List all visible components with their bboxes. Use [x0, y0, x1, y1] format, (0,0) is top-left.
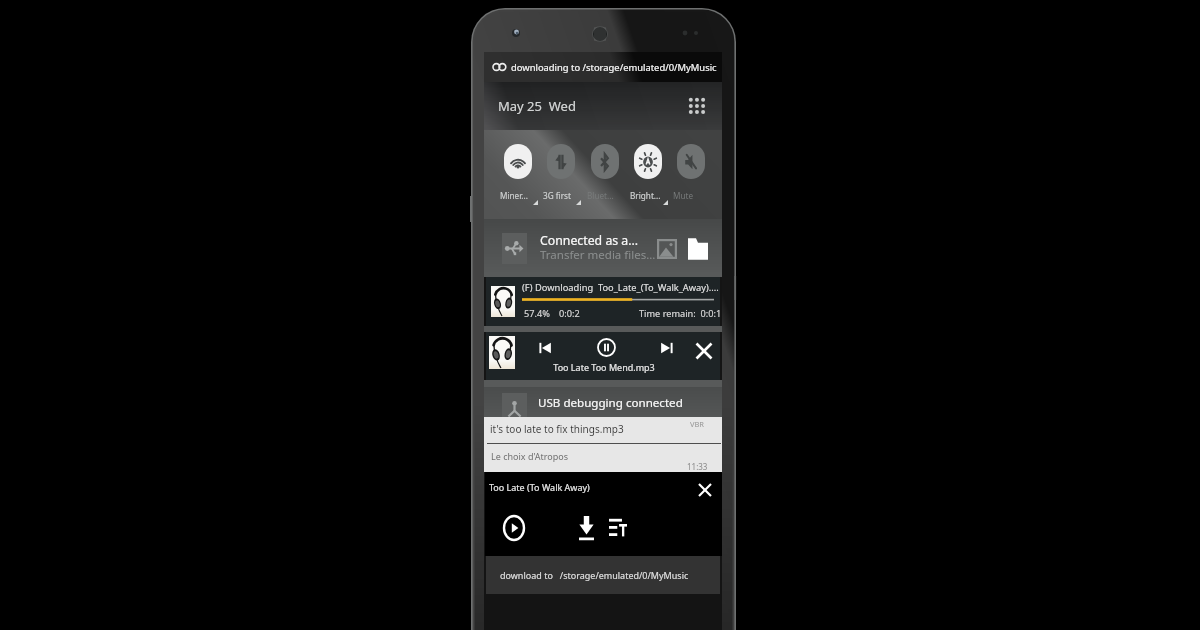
button[interactable]: Next: [655, 336, 679, 360]
button[interactable]: 3G first: [546, 144, 576, 204]
staticText: Transfer media files...: [540, 247, 656, 263]
staticText: it's too late to fix things.mp3: [490, 422, 624, 436]
button[interactable]: Previous: [533, 336, 557, 360]
staticText: Bluet...: [587, 190, 614, 201]
staticText: VBR: [690, 419, 705, 429]
staticText: 3G first: [543, 190, 571, 201]
staticText: download to /storage/emulated/0/MyMusic: [500, 569, 689, 581]
button[interactable]: Bluet...: [590, 144, 620, 204]
staticText: Too Late Too Mend.mp3: [518, 361, 690, 373]
staticText: Time remain: 0:0:1: [639, 307, 722, 320]
button[interactable]: Bright...: [633, 144, 663, 204]
button[interactable]: Pause: [594, 335, 618, 359]
button[interactable]: Quick settings: [684, 93, 710, 119]
staticText: 57.4%: [524, 307, 550, 320]
button[interactable]: Miner...: [503, 144, 533, 204]
staticText: USB debugging connected: [538, 395, 683, 411]
staticText: 11:33: [687, 461, 708, 472]
button[interactable]: Playlist: [605, 515, 631, 541]
button[interactable]: Dismiss: [692, 477, 718, 503]
button[interactable]: Gallery: [657, 239, 677, 259]
staticText: downloading to /storage/emulated/0/MyMus…: [511, 61, 717, 74]
button[interactable]: Play: [499, 513, 529, 543]
staticText: Connected as a...: [540, 232, 639, 249]
button[interactable]: Download: [572, 514, 600, 542]
button[interactable]: Close: [691, 338, 717, 364]
staticText: Too Late (To Walk Away): [489, 481, 590, 493]
staticText: Bright...: [630, 190, 660, 201]
button[interactable]: Files: [688, 235, 708, 262]
staticText: Miner...: [500, 190, 528, 201]
staticText: (F) Downloading Too_Late_(To_Walk_Away).…: [522, 281, 719, 294]
staticText: 0:0:2: [559, 307, 580, 320]
staticText: Le choix d'Atropos: [491, 450, 569, 462]
staticText: Mute: [673, 190, 694, 201]
button[interactable]: Mute: [676, 144, 706, 204]
staticText: May 25 Wed: [498, 97, 576, 115]
